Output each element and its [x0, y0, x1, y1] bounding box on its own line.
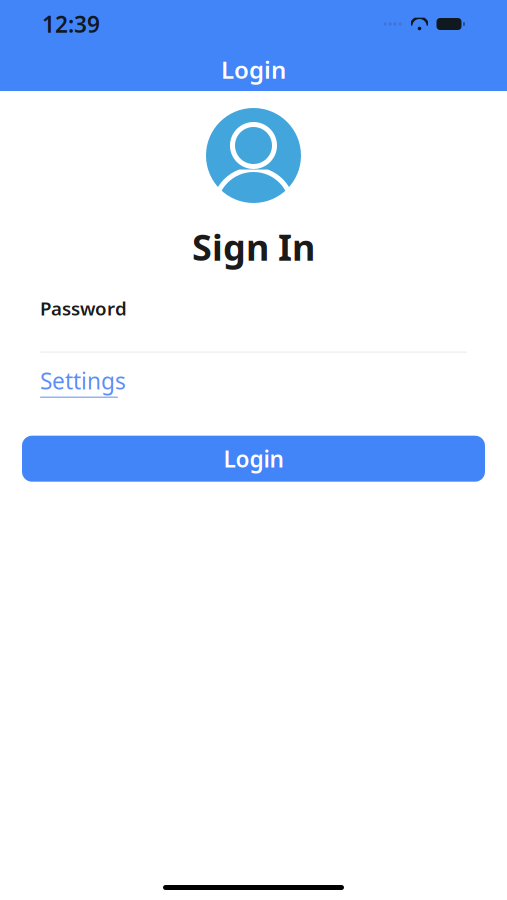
staticText: Login — [221, 54, 286, 85]
staticText: Settings — [40, 366, 126, 396]
staticText: 12:39 — [42, 9, 100, 39]
staticText: Password — [40, 296, 127, 321]
button[interactable]: Login — [22, 436, 485, 482]
button[interactable]: Settings — [40, 366, 126, 398]
staticText: Login — [223, 444, 283, 474]
staticText: Sign In — [192, 223, 315, 271]
